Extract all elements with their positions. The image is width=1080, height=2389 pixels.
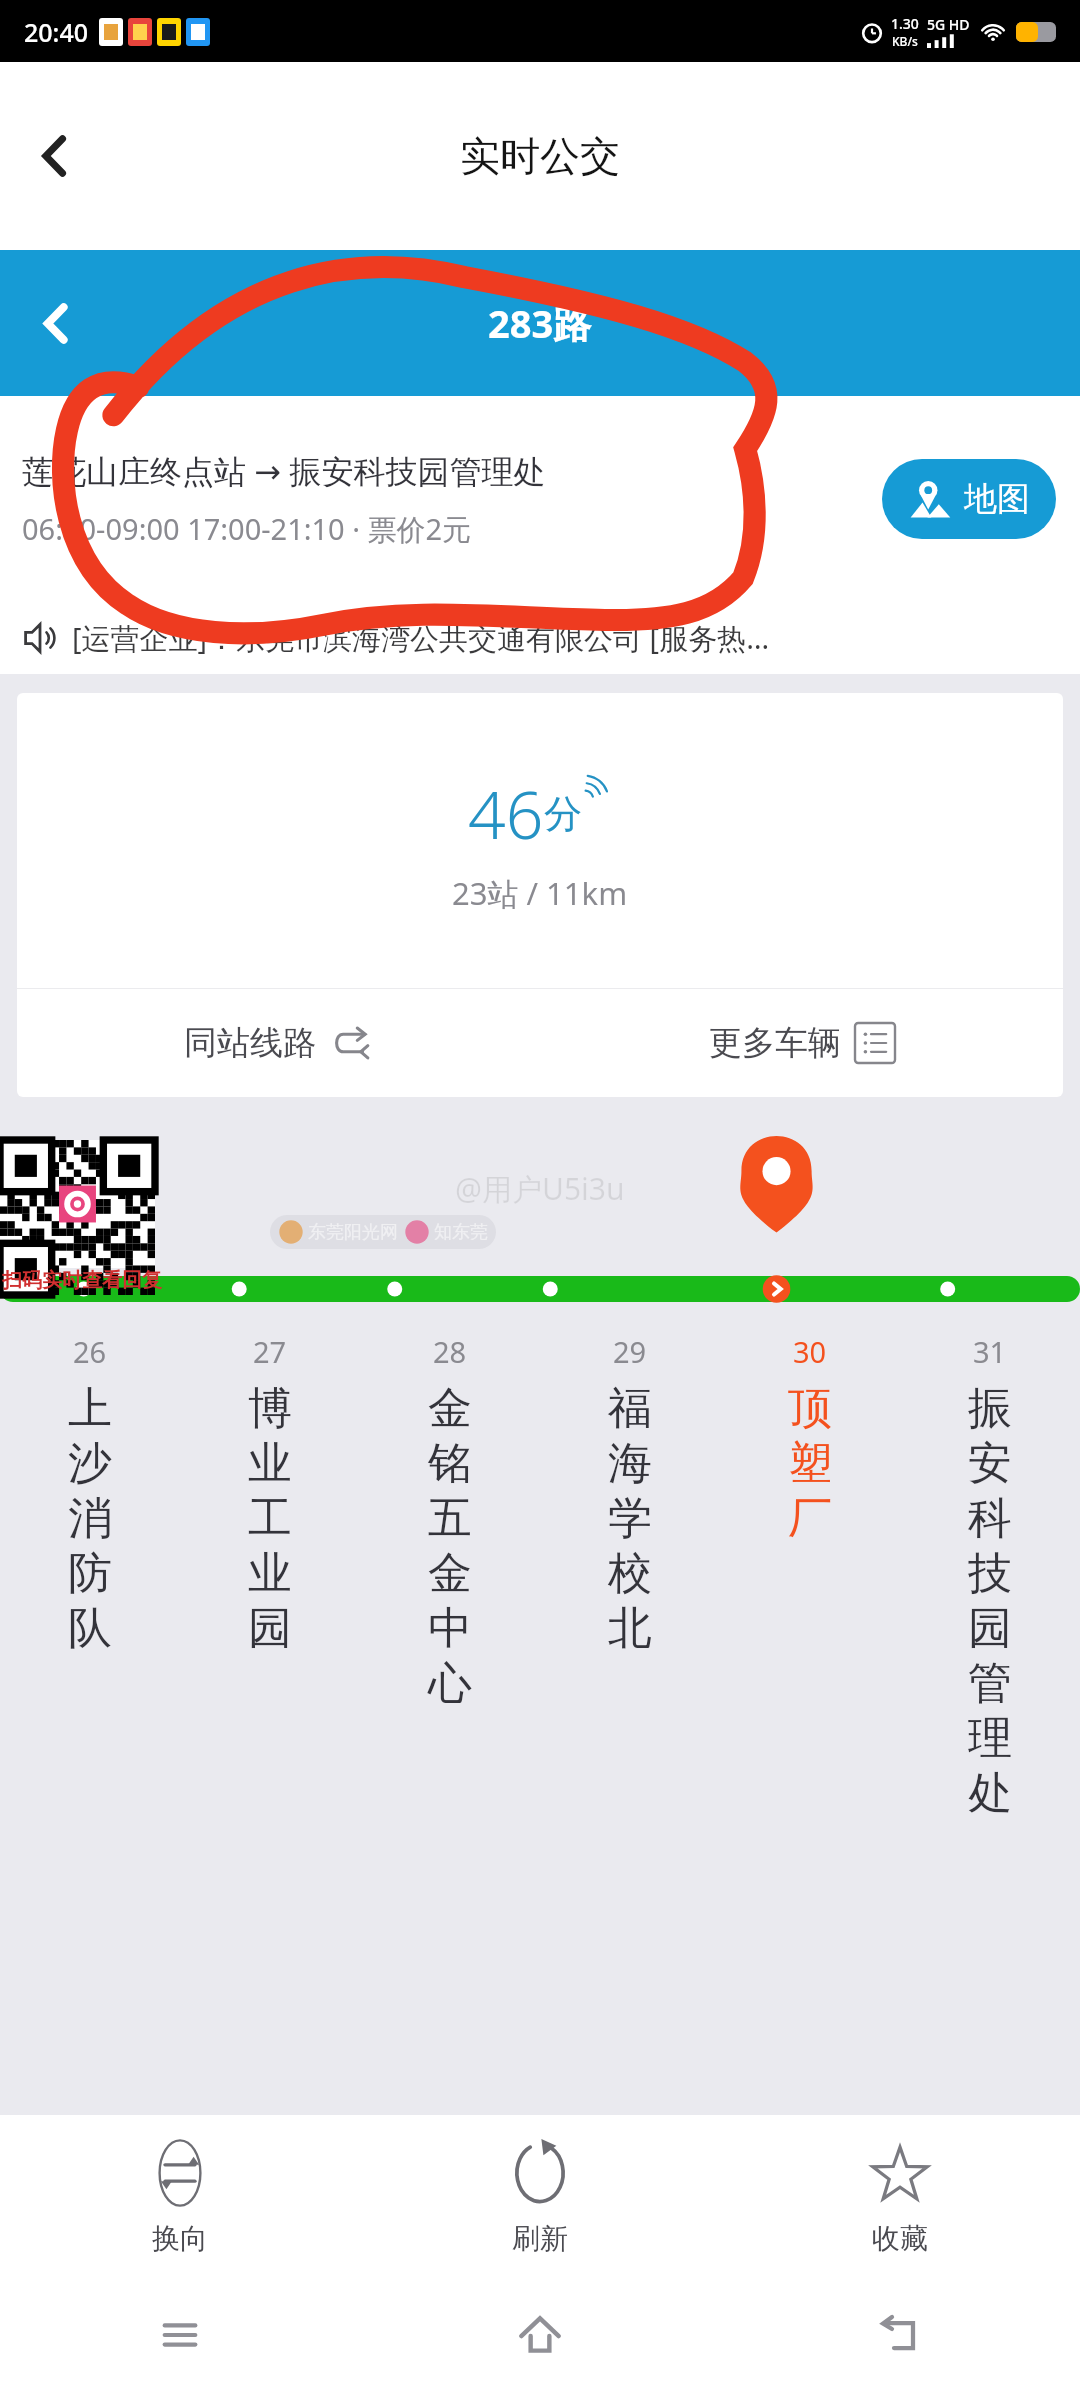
staticText: 东莞阳光网 <box>308 1221 398 1244</box>
staticText: 铭 <box>428 1436 472 1491</box>
staticText: 业 <box>248 1436 292 1491</box>
staticText: 5G HD <box>927 15 970 34</box>
staticText: 塑 <box>788 1436 832 1491</box>
staticText: 北 <box>608 1601 652 1656</box>
staticText: 莲花山庄终点站 → 振安科技园管理处 <box>22 449 546 493</box>
staticText: 中 <box>428 1601 472 1656</box>
button[interactable]: 28 <box>360 1332 540 1711</box>
staticText: 五 <box>428 1491 472 1546</box>
staticText: 28 <box>433 1332 467 1371</box>
staticText: 顶 <box>788 1381 832 1436</box>
staticText: 知东莞 <box>434 1221 488 1244</box>
staticText: 1.30 <box>891 14 919 33</box>
staticText: 博 <box>248 1381 292 1436</box>
button[interactable]: 主屏幕 <box>360 2280 720 2389</box>
staticText: 30 <box>793 1332 827 1371</box>
staticText: 园 <box>968 1601 1012 1656</box>
button[interactable]: 26 <box>0 1332 180 1656</box>
staticText: 46 <box>468 768 544 858</box>
staticText: 技 <box>968 1546 1012 1601</box>
staticText: 厂 <box>788 1491 832 1546</box>
staticText: 沙 <box>68 1436 112 1491</box>
staticText: 扫码实时查看回复 <box>2 1268 162 1293</box>
button[interactable]: 30 <box>720 1332 900 1546</box>
button[interactable]: 31 <box>900 1332 1080 1821</box>
staticText: 分 <box>544 790 582 838</box>
staticText: 06:30-09:00 17:00-21:10 · 票价2元 <box>22 509 472 549</box>
staticText: 科 <box>968 1491 1012 1546</box>
staticText: 收藏 <box>872 2221 928 2256</box>
staticText: 管 <box>968 1656 1012 1711</box>
staticText: KB/s <box>892 33 918 49</box>
staticText: 金 <box>428 1381 472 1436</box>
button[interactable]: 同站线路 <box>17 989 540 1097</box>
staticText: 23站 / 11km <box>452 872 628 914</box>
staticText: 26 <box>73 1332 107 1371</box>
button[interactable]: 刷新 <box>360 2115 720 2280</box>
staticText: 实时公交 <box>460 131 620 181</box>
button[interactable]: 更多车辆 <box>540 989 1063 1097</box>
staticText: 地图 <box>964 478 1030 520</box>
staticText: 20:40 <box>24 15 89 49</box>
staticText: 刷新 <box>512 2221 568 2256</box>
staticText: 换向 <box>152 2221 208 2256</box>
staticText: 防 <box>68 1546 112 1601</box>
staticText: 理 <box>968 1711 1012 1766</box>
staticText: 金 <box>428 1546 472 1601</box>
staticText: 31 <box>973 1332 1007 1371</box>
button[interactable]: 27 <box>180 1332 360 1656</box>
button[interactable]: [运营企业]：东莞市滨海湾公共交通有限公司 [服务热… <box>0 601 1080 674</box>
staticText: 福 <box>608 1381 652 1436</box>
staticText: 园 <box>248 1601 292 1656</box>
staticText: 上 <box>68 1381 112 1436</box>
button[interactable]: 换向 <box>0 2115 360 2280</box>
button[interactable]: 返回 <box>12 113 98 199</box>
staticText: 消 <box>68 1491 112 1546</box>
staticText: 振 <box>968 1381 1012 1436</box>
button[interactable]: 最近任务 <box>0 2280 360 2389</box>
button[interactable]: 收藏 <box>720 2115 1080 2280</box>
staticText: 29 <box>613 1332 647 1371</box>
staticText: 心 <box>428 1656 472 1711</box>
staticText: 更多车辆 <box>709 1022 841 1064</box>
staticText: 业 <box>248 1546 292 1601</box>
staticText: @用户U5i3u <box>455 1168 625 1209</box>
button[interactable]: 地图 <box>882 459 1056 539</box>
staticText: 队 <box>68 1601 112 1656</box>
staticText: 处 <box>968 1766 1012 1821</box>
staticText: 海 <box>608 1436 652 1491</box>
staticText: 283路 <box>488 297 592 349</box>
button[interactable]: 29 <box>540 1332 720 1656</box>
staticText: 校 <box>608 1546 652 1601</box>
staticText: 学 <box>608 1491 652 1546</box>
staticText: 安 <box>968 1436 1012 1491</box>
button[interactable]: 返回 <box>14 281 98 365</box>
button[interactable]: 返回 <box>720 2280 1080 2389</box>
staticText: 27 <box>253 1332 287 1371</box>
staticText: 工 <box>248 1491 292 1546</box>
staticText: 同站线路 <box>184 1022 316 1064</box>
staticText: [运营企业]：东莞市滨海湾公共交通有限公司 [服务热… <box>72 618 1068 658</box>
